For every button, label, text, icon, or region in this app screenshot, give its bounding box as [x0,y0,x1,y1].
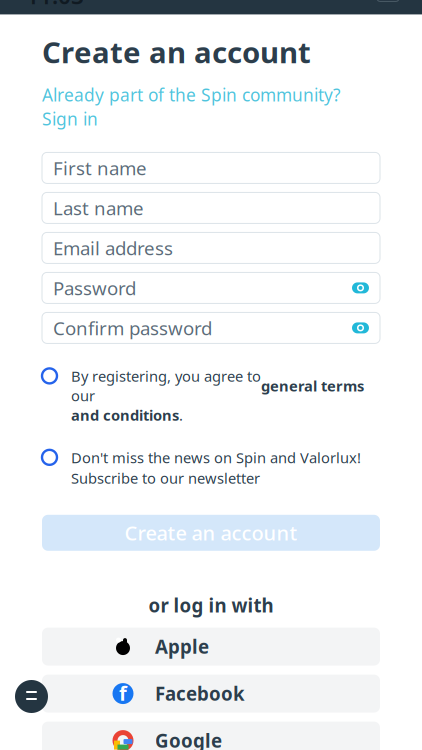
button[interactable]: Google [42,722,380,750]
staticText: Apple [155,634,209,659]
button[interactable]: Apple [42,628,380,666]
staticText: Subscribe to our newsletter [71,468,260,488]
staticText: and conditions [71,405,179,425]
staticText: Don't miss the news on Spin and Valorlux… [71,448,361,467]
button[interactable]: First name [42,152,380,183]
staticText: Create an account [42,32,311,71]
staticText: Email address [53,235,173,260]
button[interactable]: Last name [42,192,380,223]
staticText: By registering, you agree to our [71,366,261,405]
staticText: Already part of the Spin community? [42,83,341,106]
staticText: Facebook [155,681,245,706]
staticText: Confirm password [53,315,212,340]
staticText: Sign in [42,107,98,130]
staticText: Create an account [124,519,297,546]
button[interactable]: Confirm password [42,312,380,343]
button[interactable]: Scroll down [15,680,48,713]
staticText: . [179,405,183,425]
staticText: or log in with [148,593,273,618]
button[interactable]: Password [42,272,380,303]
button[interactable]: f [42,675,380,713]
button[interactable]: By registering, you agree to our [42,366,380,425]
staticText: Last name [53,195,144,220]
staticText: 11:03 [26,0,84,10]
button[interactable]: Don't miss the news on Spin and Valorlux… [42,448,380,488]
staticText: f [119,680,127,706]
button[interactable]: Create an account [42,515,380,551]
staticText: general terms [261,376,364,396]
staticText: First name [53,155,147,180]
staticText: ⚡︎ [384,0,392,2]
staticText: Google [155,728,222,750]
button[interactable]: Already part of the Spin community? [42,83,341,130]
button[interactable]: Email address [42,232,380,263]
staticText: Password [53,275,136,300]
